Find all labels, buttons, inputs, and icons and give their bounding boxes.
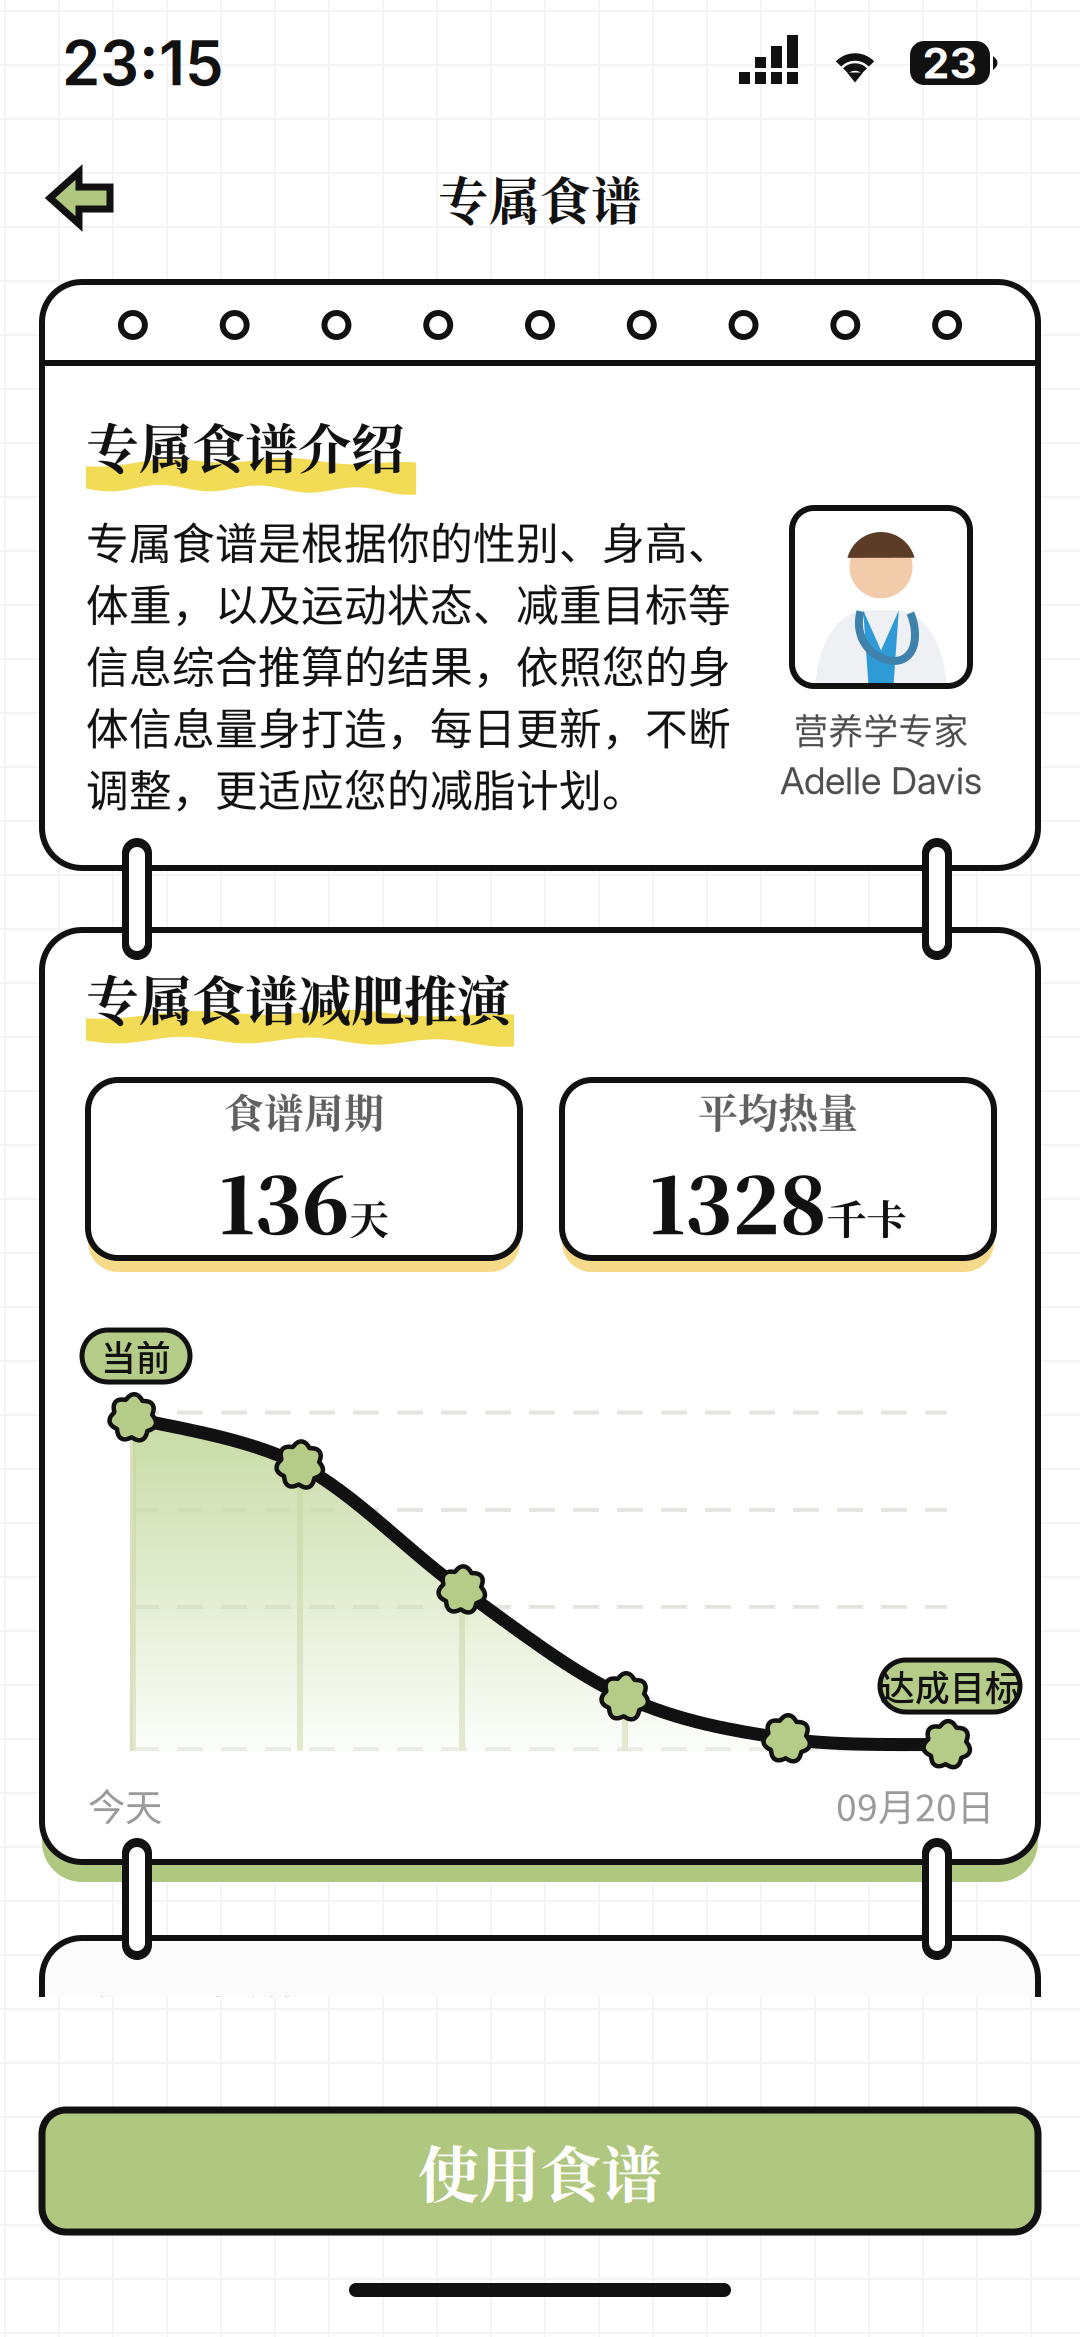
staticText: 专属食谱减肥推演 [86, 959, 510, 1036]
staticText: 营养学专家 [793, 704, 968, 754]
staticText: 天 [349, 1188, 389, 1246]
staticText: 达成目标 [880, 1661, 1020, 1711]
staticText: 平均热量 [698, 1082, 858, 1139]
staticText: 1328 [649, 1145, 826, 1256]
staticText: 当前 [101, 1331, 171, 1381]
button[interactable]: 使用食谱 [42, 2110, 1038, 2232]
staticText: 23:15 [62, 26, 224, 100]
staticText: 136 [219, 1145, 349, 1256]
staticText: 23 [922, 37, 977, 89]
staticText: 今天 [88, 1778, 162, 1832]
staticText: 千卡 [826, 1188, 906, 1246]
staticText: 使用食谱 [418, 2127, 662, 2215]
staticText: 专属食谱 [438, 162, 642, 234]
staticText: 食谱周期 [224, 1082, 384, 1139]
staticText: Adelle Davis [780, 758, 982, 803]
staticText: 09月20日 [836, 1778, 994, 1832]
staticText: 专属食谱是根据你的性别、身高、 体重，以及运动状态、减重目标等 信息综合推算的结… [86, 510, 731, 819]
staticText: 专属食谱介绍 [86, 407, 404, 484]
button[interactable]: 返回 [0, 148, 146, 248]
